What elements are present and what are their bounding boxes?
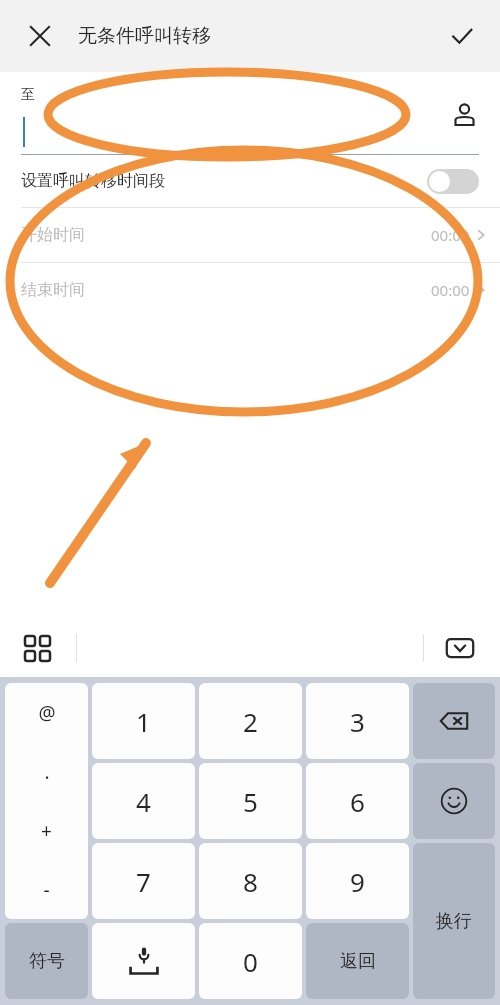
button[interactable]: 符号 xyxy=(5,923,88,999)
staticText: 无条件呼叫转移 xyxy=(78,24,211,48)
staticText: 8 xyxy=(243,864,258,899)
button[interactable]: Hide keyboard xyxy=(440,628,480,668)
staticText: - xyxy=(43,877,50,903)
button[interactable]: 结束时间 xyxy=(0,263,500,317)
staticText: 00:00 xyxy=(431,280,470,300)
button[interactable]: @ xyxy=(5,683,88,919)
staticText: 换行 xyxy=(436,910,472,933)
staticText: 1 xyxy=(136,704,151,739)
staticText: 6 xyxy=(350,784,365,819)
button[interactable]: 设置呼叫转移时间段 xyxy=(0,155,500,207)
staticText: 至 xyxy=(21,86,35,104)
staticText: 4 xyxy=(136,784,151,819)
button[interactable]: 3 xyxy=(306,683,409,759)
staticText: 设置呼叫转移时间段 xyxy=(21,171,165,191)
button[interactable]: Confirm xyxy=(438,12,486,60)
button[interactable]: 9 xyxy=(306,843,409,919)
button[interactable]: 6 xyxy=(306,763,409,839)
button[interactable]: Keyboard layouts xyxy=(18,629,56,667)
staticText: 5 xyxy=(243,784,258,819)
button[interactable]: 4 xyxy=(92,763,195,839)
staticText: 结束时间 xyxy=(21,280,85,300)
staticText: + xyxy=(41,818,52,844)
button[interactable]: 换行 xyxy=(413,843,495,999)
staticText: 2 xyxy=(243,704,258,739)
staticText: 返回 xyxy=(340,950,376,973)
staticText: @ xyxy=(38,700,56,726)
button[interactable]: 0 xyxy=(199,923,302,999)
button[interactable]: 5 xyxy=(199,763,302,839)
staticText: 开始时间 xyxy=(21,225,85,245)
button[interactable]: 8 xyxy=(199,843,302,919)
staticText: 9 xyxy=(350,864,365,899)
button[interactable]: Choose contact xyxy=(442,92,486,136)
button[interactable]: Close xyxy=(16,12,64,60)
button[interactable]: Emoji xyxy=(413,763,495,839)
button[interactable]: 1 xyxy=(92,683,195,759)
staticText: . xyxy=(44,759,50,785)
button[interactable]: Space xyxy=(92,923,195,999)
staticText: 7 xyxy=(136,864,151,899)
staticText: 0 xyxy=(243,944,258,979)
staticText: 3 xyxy=(350,704,365,739)
staticText: 符号 xyxy=(29,950,65,973)
button[interactable]: 返回 xyxy=(306,923,409,999)
staticText: 00:00 xyxy=(431,225,470,245)
button[interactable]: Delete xyxy=(413,683,495,759)
button[interactable]: 7 xyxy=(92,843,195,919)
button[interactable]: 开始时间 xyxy=(0,208,500,262)
button[interactable]: 2 xyxy=(199,683,302,759)
